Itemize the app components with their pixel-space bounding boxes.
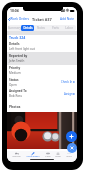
button[interactable]: Priority [7,65,77,76]
staticText: Parts [52,26,59,30]
staticText: Ticket #37 [32,17,52,22]
button[interactable]: Labor [62,25,76,31]
staticText: Bob Ross [9,94,22,98]
button[interactable]: Parts [48,25,62,31]
button[interactable]: Parts [45,152,51,158]
staticText: Details [23,26,33,30]
staticText: Vehicles [12,155,21,158]
button[interactable]: Assigned To [7,88,77,99]
button[interactable]: Add Note [58,17,77,21]
button[interactable]: Details [7,40,77,52]
button[interactable]: More [66,152,72,158]
button[interactable]: Add photo [66,131,77,142]
staticText: Labor [65,26,73,30]
button[interactable] [7,112,77,149]
staticText: Priority [9,66,21,70]
button[interactable]: Check In [61,80,75,84]
button[interactable]: Reported by [7,52,77,65]
staticText: Notes [37,26,45,30]
staticText: Assigned To [9,89,27,93]
button[interactable]: Vehicles [12,152,21,158]
button[interactable]: Back to Work Orders [7,17,32,21]
staticText: 10:04 [10,8,19,13]
staticText: Left front light out [9,47,35,51]
staticText: Check In [61,80,73,84]
staticText: Medium [9,71,21,75]
staticText: Summary [8,26,21,30]
staticText: Team [55,155,61,158]
button[interactable]: Summary [8,25,21,31]
staticText: Reported by [9,54,28,58]
staticText: Truck 324 [9,35,26,40]
button[interactable]: Status [7,76,77,88]
button[interactable]: Team [55,152,61,158]
button[interactable]: Assign [64,92,75,96]
button[interactable]: Close menu [67,143,77,153]
button[interactable]: Work Orders [26,152,40,158]
staticText: Details [9,42,20,46]
staticText: Assign [64,92,73,96]
staticText: John Smith [9,59,25,63]
staticText: More [66,155,72,158]
staticText: Photos [9,104,21,108]
staticText: Status [9,78,19,82]
staticText: Parts [45,155,51,158]
staticText: Open [9,83,17,87]
staticText: Work Orders [10,17,30,21]
button[interactable]: Details [21,25,34,31]
button[interactable]: Notes [34,25,48,31]
staticText: Work Orders [26,155,40,158]
